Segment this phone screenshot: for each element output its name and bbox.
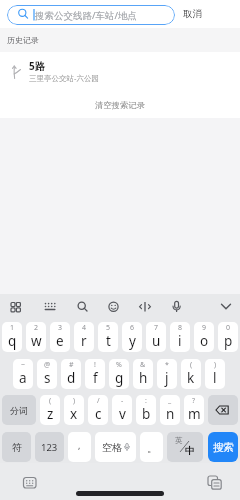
button[interactable]: 英 bbox=[167, 432, 203, 462]
staticText: 中 bbox=[185, 445, 195, 457]
staticText: : bbox=[145, 396, 147, 406]
staticText: ) bbox=[73, 396, 76, 406]
button[interactable]: 7 bbox=[146, 322, 166, 352]
button[interactable]: 8 bbox=[170, 322, 190, 352]
button[interactable]: 分词 bbox=[2, 395, 36, 425]
button[interactable]: % bbox=[109, 359, 129, 389]
button[interactable] bbox=[164, 296, 188, 318]
button[interactable]: 3 bbox=[50, 322, 70, 352]
button[interactable]: _ bbox=[160, 395, 180, 425]
button[interactable] bbox=[133, 296, 157, 318]
staticText: _ bbox=[168, 396, 172, 406]
button[interactable] bbox=[101, 296, 125, 318]
button[interactable] bbox=[4, 296, 28, 318]
button[interactable]: : bbox=[136, 395, 156, 425]
staticText: f bbox=[93, 369, 98, 387]
button[interactable]: & bbox=[133, 359, 153, 389]
staticText: 分词 bbox=[10, 405, 28, 416]
button[interactable]: ) bbox=[64, 395, 84, 425]
staticText: * bbox=[165, 360, 169, 370]
button[interactable]: 取消 bbox=[178, 4, 207, 24]
staticText: b bbox=[142, 405, 151, 423]
staticText: # bbox=[69, 360, 74, 370]
staticText: t bbox=[106, 332, 111, 350]
button[interactable] bbox=[214, 296, 238, 318]
staticText: @ bbox=[44, 360, 51, 370]
staticText: r bbox=[81, 332, 87, 350]
button[interactable]: 123 bbox=[35, 432, 64, 462]
button[interactable]: - bbox=[112, 395, 132, 425]
staticText: u bbox=[152, 332, 161, 350]
staticText: & bbox=[140, 360, 146, 370]
button[interactable]: , bbox=[68, 432, 91, 462]
staticText: 4 bbox=[82, 323, 87, 333]
button[interactable] bbox=[38, 296, 62, 318]
staticText: i bbox=[178, 332, 182, 350]
button[interactable]: ( bbox=[181, 359, 201, 389]
staticText: v bbox=[119, 405, 126, 423]
staticText: 3 bbox=[58, 323, 63, 333]
staticText: 取消 bbox=[183, 8, 202, 20]
button[interactable]: 4 bbox=[74, 322, 94, 352]
staticText: p bbox=[224, 332, 233, 350]
button[interactable]: 搜索 bbox=[208, 432, 238, 462]
staticText: 三里亭公交站-六公园 bbox=[29, 73, 99, 83]
button[interactable]: # bbox=[61, 359, 81, 389]
button[interactable]: 清空搜索记录 bbox=[70, 96, 170, 114]
staticText: ( bbox=[49, 396, 52, 406]
button[interactable]: * bbox=[157, 359, 177, 389]
staticText: 9 bbox=[202, 323, 207, 333]
button[interactable] bbox=[203, 471, 227, 495]
staticText: / bbox=[97, 396, 100, 406]
staticText: 搜索 bbox=[213, 441, 234, 454]
button[interactable] bbox=[0, 52, 240, 88]
button[interactable] bbox=[18, 470, 42, 494]
staticText: ( bbox=[190, 360, 193, 370]
staticText: % bbox=[116, 360, 122, 370]
staticText: h bbox=[139, 369, 148, 387]
button[interactable]: 空格 bbox=[95, 432, 136, 462]
staticText: w bbox=[31, 332, 42, 350]
staticText: 1 bbox=[10, 323, 15, 333]
button[interactable] bbox=[7, 5, 175, 25]
staticText: m bbox=[188, 405, 201, 423]
button[interactable]: 0 bbox=[218, 322, 238, 352]
button[interactable]: 1 bbox=[2, 322, 22, 352]
button[interactable]: ) bbox=[205, 359, 225, 389]
button[interactable]: 9 bbox=[194, 322, 214, 352]
button[interactable] bbox=[208, 395, 238, 425]
staticText: 搜索公交线路/车站/地点 bbox=[35, 9, 138, 22]
staticText: 空格 bbox=[102, 441, 122, 454]
staticText: ! bbox=[94, 360, 96, 370]
button[interactable]: / bbox=[88, 395, 108, 425]
staticText: ? bbox=[192, 396, 196, 406]
staticText: 8 bbox=[178, 323, 183, 333]
staticText: - bbox=[121, 396, 124, 406]
staticText: ) bbox=[214, 360, 217, 370]
staticText: 6 bbox=[130, 323, 135, 333]
staticText: s bbox=[44, 369, 51, 387]
button[interactable]: ~ bbox=[13, 359, 33, 389]
button[interactable]: 2 bbox=[26, 322, 46, 352]
staticText: d bbox=[67, 369, 76, 387]
staticText: j bbox=[165, 369, 169, 387]
staticText: x bbox=[70, 405, 78, 423]
button[interactable] bbox=[70, 296, 94, 318]
button[interactable]: 。 bbox=[140, 432, 163, 462]
button[interactable]: @ bbox=[37, 359, 57, 389]
staticText: 英 bbox=[175, 436, 183, 445]
button[interactable]: ! bbox=[85, 359, 105, 389]
staticText: 0 bbox=[226, 323, 231, 333]
staticText: 7 bbox=[154, 323, 159, 333]
button[interactable]: 6 bbox=[122, 322, 142, 352]
staticText: 历史记录 bbox=[7, 35, 39, 45]
button[interactable]: ( bbox=[40, 395, 60, 425]
staticText: o bbox=[200, 332, 209, 350]
staticText: 123 bbox=[41, 441, 58, 454]
staticText: 2 bbox=[34, 323, 39, 333]
button[interactable]: 符 bbox=[2, 432, 31, 462]
button[interactable]: ? bbox=[184, 395, 204, 425]
staticText: c bbox=[95, 405, 102, 423]
button[interactable]: 5 bbox=[98, 322, 118, 352]
staticText: 5路 bbox=[29, 59, 45, 73]
